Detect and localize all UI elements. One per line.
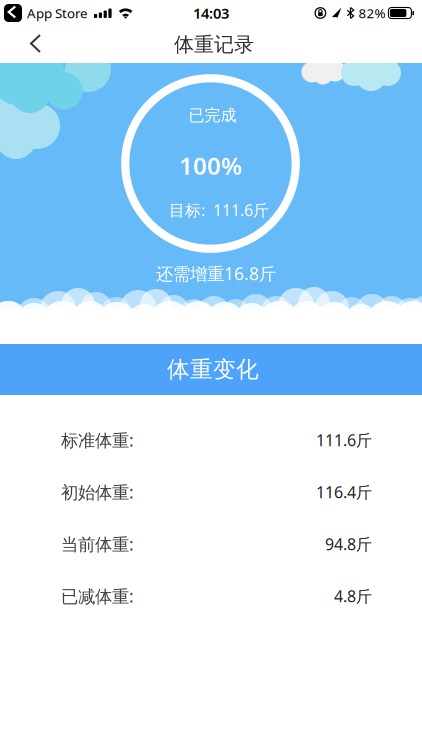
button[interactable]: Back to App Store: [4, 4, 88, 22]
staticText: 体重变化: [167, 356, 259, 383]
staticText: 初始体重:: [61, 480, 134, 503]
staticText: 116.4斤: [316, 481, 372, 503]
staticText: 14:03: [193, 3, 229, 23]
staticText: 111.6斤: [316, 429, 372, 451]
staticText: 目标: 111.6斤: [169, 199, 269, 221]
staticText: 4.8斤: [334, 585, 372, 607]
staticText: 体重记录: [174, 32, 254, 57]
staticText: 当前体重:: [61, 532, 134, 555]
staticText: 已完成: [188, 106, 236, 125]
staticText: 82%: [358, 4, 385, 22]
staticText: 100%: [179, 150, 242, 181]
staticText: 还需增重16.8斤: [156, 262, 276, 285]
staticText: 标准体重:: [61, 428, 134, 451]
staticText: 已减体重:: [61, 584, 134, 607]
button[interactable]: Back: [0, 26, 62, 63]
staticText: App Store: [27, 4, 88, 22]
staticText: 94.8斤: [325, 533, 372, 555]
